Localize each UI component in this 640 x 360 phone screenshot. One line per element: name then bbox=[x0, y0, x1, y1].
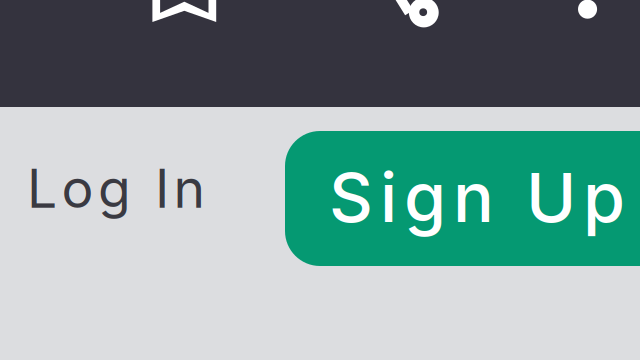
button[interactable]: Bookmarks bbox=[152, 0, 216, 24]
staticText: Log In bbox=[27, 156, 205, 220]
button[interactable]: Account bbox=[578, 0, 597, 24]
button[interactable]: Sign Up bbox=[285, 131, 640, 266]
button[interactable]: Tags bbox=[397, 0, 451, 28]
button[interactable]: Log In bbox=[27, 156, 227, 222]
staticText: Sign Up bbox=[329, 156, 625, 238]
